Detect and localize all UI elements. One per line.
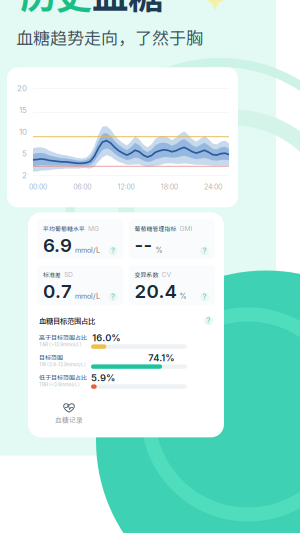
staticText: mmol/L	[75, 246, 100, 254]
staticText: SD	[64, 271, 73, 279]
staticText: 血糖趋势走向，了然于胸	[16, 25, 203, 49]
staticText: %	[179, 292, 186, 300]
staticText: TBR (<3.9mmol/L)	[39, 382, 80, 387]
staticText: 5	[22, 149, 27, 158]
staticText: ?	[111, 292, 115, 301]
staticText: 24:00	[204, 183, 222, 191]
staticText: 18:00	[161, 183, 178, 191]
staticText: 目标范围	[39, 353, 63, 362]
staticText: 历史	[20, 0, 92, 20]
staticText: 74.1%	[148, 352, 174, 363]
staticText: %	[155, 246, 162, 254]
staticText: 00:00	[29, 183, 47, 191]
staticText: 血糖记录	[55, 415, 83, 424]
staticText: 血糖	[92, 0, 164, 20]
staticText: 标准差	[43, 270, 61, 279]
staticText: --	[134, 234, 152, 256]
staticText: 平均葡萄糖水平	[43, 224, 85, 233]
staticText: 葡萄糖管理指标	[134, 224, 176, 233]
staticText: MG	[88, 225, 99, 233]
staticText: 6.9	[43, 234, 72, 256]
staticText: ?	[202, 292, 206, 301]
staticText: 2	[22, 171, 27, 180]
staticText: 10	[19, 127, 27, 137]
staticText: mmol/L	[75, 292, 100, 300]
staticText: ?	[202, 246, 206, 255]
staticText: 5.9%	[91, 372, 115, 383]
staticText: 高于目标范围占比	[39, 333, 87, 342]
staticText: 20.4	[134, 280, 176, 302]
staticText: 低于目标范围占比	[39, 373, 87, 382]
staticText: 12:00	[117, 183, 134, 191]
staticText: GMI	[179, 225, 192, 233]
staticText: 06:00	[73, 183, 91, 191]
staticText: ?	[206, 316, 210, 325]
staticText: 血糖目标范围占比	[39, 315, 95, 326]
staticText: 0.7	[43, 280, 72, 302]
staticText: 变异系数	[134, 270, 158, 279]
staticText: CV	[161, 271, 171, 279]
staticText: ?	[111, 246, 115, 255]
staticText: 15	[19, 105, 27, 115]
staticText: 20	[17, 84, 27, 93]
staticText: 16.0%	[92, 332, 120, 343]
button[interactable]: 血糖记录	[49, 403, 89, 424]
staticText: TIR (3.9-13.9mmol/L)	[39, 362, 86, 367]
staticText: TAR (>13.9mmol/L)	[39, 342, 82, 347]
